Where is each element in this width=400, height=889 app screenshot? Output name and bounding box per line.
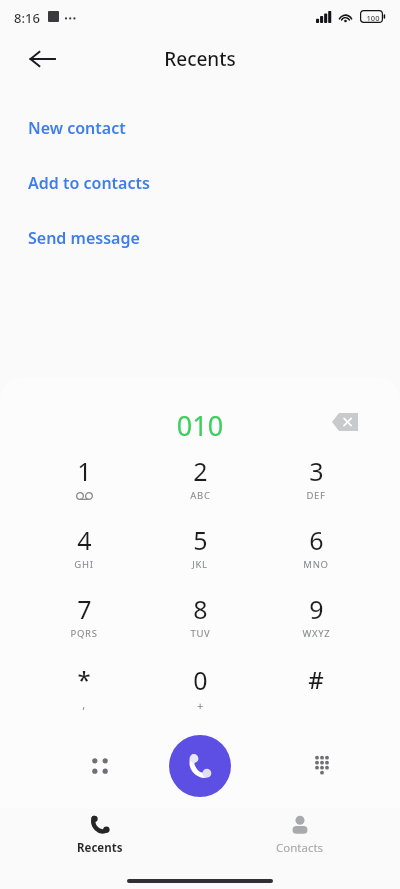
button[interactable]: Backspace (321, 398, 369, 446)
button[interactable]: Dialpad (298, 740, 346, 788)
staticText: MNO (303, 558, 329, 571)
staticText: JKL (192, 558, 208, 571)
staticText: # (308, 663, 324, 696)
button[interactable]: Back (18, 35, 66, 83)
staticText: 3 (309, 454, 324, 488)
button[interactable]: 8 (152, 592, 248, 656)
staticText: * (77, 663, 91, 696)
staticText: TUV (190, 627, 211, 640)
staticText: , (82, 697, 86, 712)
button[interactable]: 2 (152, 454, 248, 518)
button[interactable]: 0 (152, 663, 248, 727)
staticText: 100 (363, 13, 383, 23)
button[interactable]: 4 (36, 523, 132, 587)
button[interactable]: Recents (40, 808, 160, 870)
button[interactable]: 1 (36, 454, 132, 518)
staticText: ABC (190, 489, 211, 502)
staticText: New contact (28, 117, 126, 139)
button[interactable]: Send message (0, 218, 400, 258)
staticText: Send message (28, 227, 140, 249)
staticText: 1 (77, 454, 92, 488)
staticText: 2 (193, 454, 208, 488)
staticText: 9 (309, 592, 324, 626)
staticText: 5 (193, 523, 208, 557)
staticText: Recents (77, 840, 123, 856)
staticText: GHI (74, 558, 94, 571)
button[interactable]: More options (76, 742, 124, 790)
staticText: + (197, 698, 204, 713)
button[interactable]: 9 (268, 592, 364, 656)
staticText: 6 (309, 523, 324, 557)
button[interactable]: Contacts (240, 808, 360, 870)
button[interactable]: 7 (36, 592, 132, 656)
staticText: Add to contacts (28, 172, 150, 194)
button[interactable]: 5 (152, 523, 248, 587)
staticText: 4 (77, 523, 92, 557)
button[interactable]: * (36, 663, 132, 727)
button[interactable]: # (268, 663, 364, 727)
button[interactable]: New contact (0, 108, 400, 148)
staticText: 010 (0, 407, 400, 444)
staticText: 8 (193, 592, 208, 626)
staticText: Contacts (276, 840, 324, 856)
staticText: DEF (306, 489, 326, 502)
staticText: 0 (193, 663, 208, 697)
button[interactable]: Add to contacts (0, 163, 400, 203)
button[interactable]: 3 (268, 454, 364, 518)
staticText: 7 (77, 592, 92, 626)
button[interactable]: 6 (268, 523, 364, 587)
staticText: WXYZ (302, 627, 331, 640)
button[interactable]: Call (169, 735, 231, 797)
staticText: PQRS (70, 627, 98, 640)
staticText: 8:16 (14, 9, 40, 27)
staticText: Recents (0, 46, 400, 72)
